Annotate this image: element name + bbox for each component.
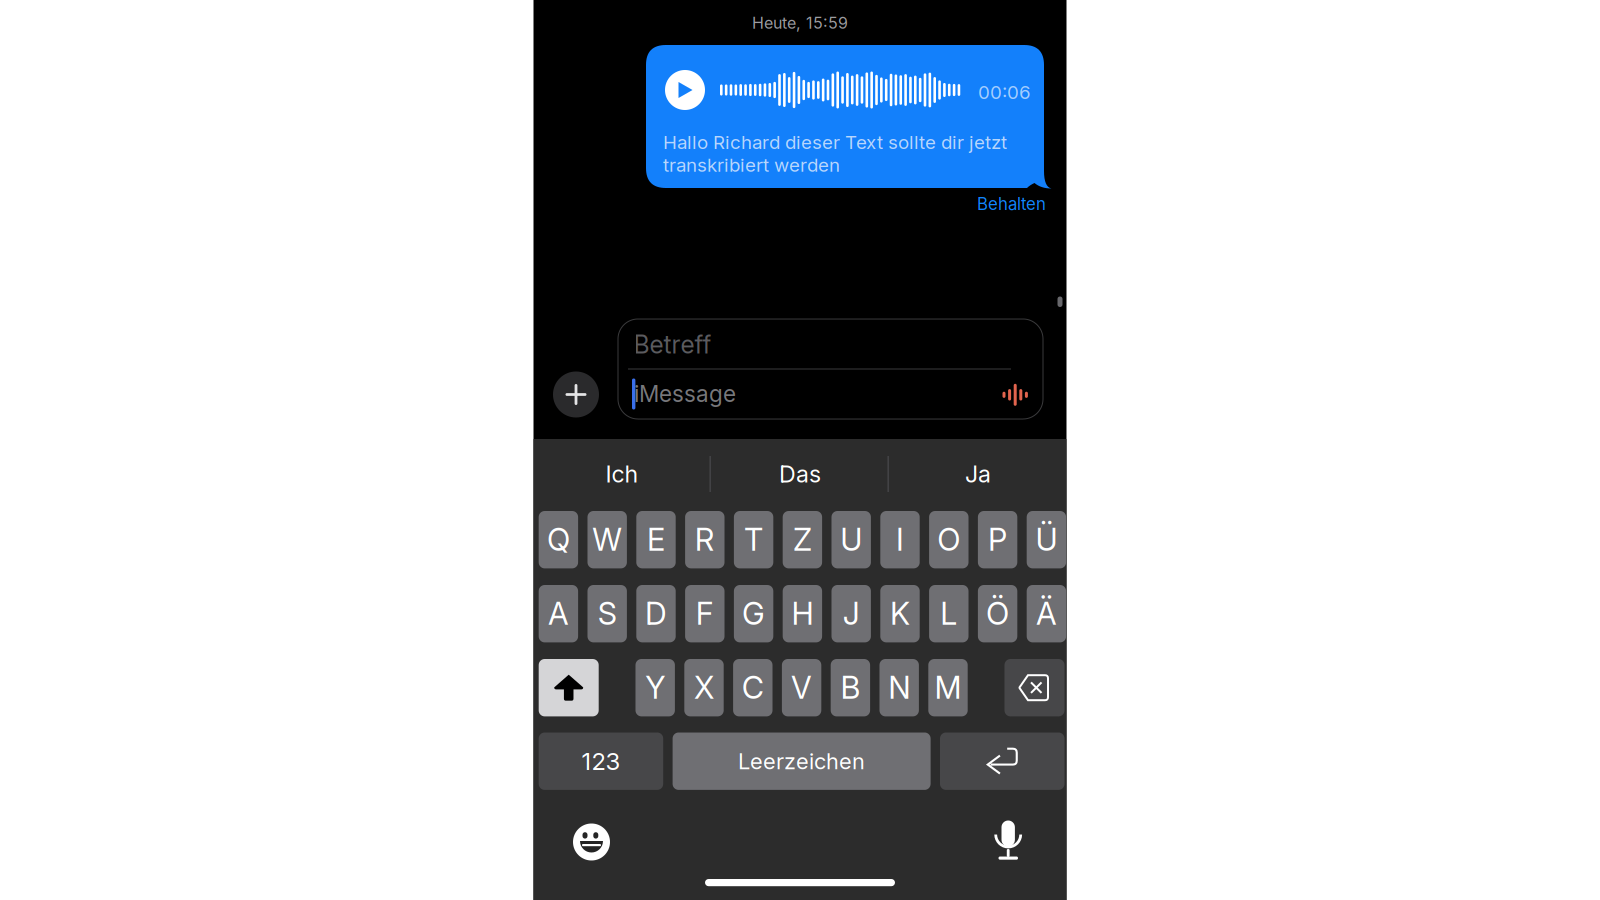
staticText: O (937, 521, 960, 558)
button[interactable]: Ich (533, 444, 710, 504)
staticText: M (934, 669, 961, 706)
staticText: T (744, 521, 763, 558)
staticText: Ja (965, 460, 991, 488)
button[interactable]: Leerzeichen (673, 732, 931, 790)
button[interactable]: V (782, 659, 821, 716)
staticText: P (988, 521, 1007, 558)
button[interactable]: Q (539, 511, 578, 568)
staticText: Ö (986, 595, 1009, 632)
button[interactable]: Delete (1004, 659, 1064, 716)
button[interactable]: Y (635, 659, 675, 716)
button[interactable]: S (587, 585, 627, 642)
staticText: H (791, 595, 813, 632)
button[interactable]: Ä (1027, 585, 1066, 642)
staticText: V (791, 669, 812, 706)
staticText: Heute, 15:59 (752, 13, 848, 33)
staticText: Das (779, 460, 821, 488)
staticText: X (694, 669, 714, 706)
staticText: K (890, 595, 910, 632)
staticText: D (645, 595, 667, 632)
button[interactable]: Emoji (566, 817, 616, 867)
staticText: E (647, 521, 665, 558)
staticText: J (843, 595, 860, 632)
button[interactable]: C (733, 659, 772, 716)
button[interactable]: E (636, 511, 676, 568)
button[interactable]: W (587, 511, 627, 568)
button[interactable]: L (929, 585, 968, 642)
button[interactable]: A (539, 585, 578, 642)
button[interactable]: Shift (539, 659, 599, 716)
button[interactable]: K (880, 585, 920, 642)
button[interactable]: T (734, 511, 773, 568)
staticText: I (896, 521, 904, 558)
button[interactable]: Ü (1027, 511, 1066, 568)
staticText: Hallo Richard dieser Text sollte dir jet… (663, 131, 1007, 176)
button[interactable]: G (734, 585, 773, 642)
staticText: Ä (1036, 595, 1057, 632)
button[interactable]: U (831, 511, 871, 568)
staticText: Ü (1035, 521, 1057, 558)
staticText: Leerzeichen (738, 748, 865, 774)
button[interactable]: I (880, 511, 920, 568)
staticText: G (742, 595, 765, 632)
staticText: B (840, 669, 860, 706)
button[interactable]: M (928, 659, 968, 716)
staticText: L (940, 595, 957, 632)
staticText: N (888, 669, 910, 706)
staticText: U (840, 521, 862, 558)
button[interactable]: H (783, 585, 822, 642)
button[interactable]: R (685, 511, 724, 568)
button[interactable]: 123 (539, 732, 663, 790)
button[interactable]: D (636, 585, 676, 642)
button[interactable]: Play audio message (665, 70, 705, 110)
button[interactable]: N (879, 659, 919, 716)
staticText: Ich (605, 460, 638, 488)
staticText: F (696, 595, 714, 632)
staticText: S (598, 595, 617, 632)
button[interactable]: Z (783, 511, 822, 568)
staticText: Z (793, 521, 812, 558)
staticText: C (742, 669, 764, 706)
staticText: Q (547, 521, 570, 558)
button[interactable]: Ö (978, 585, 1017, 642)
button[interactable]: B (831, 659, 870, 716)
button[interactable]: Add attachment (553, 371, 599, 417)
button[interactable]: Return (940, 732, 1064, 790)
button[interactable]: Dictation (989, 817, 1029, 867)
staticText: Betreff (633, 329, 711, 359)
staticText: A (548, 595, 569, 632)
button[interactable]: J (831, 585, 871, 642)
button[interactable]: X (684, 659, 724, 716)
staticText: R (695, 521, 715, 558)
staticText: Y (645, 669, 665, 706)
button[interactable]: Das (711, 444, 888, 504)
button[interactable]: O (929, 511, 968, 568)
button[interactable]: Behalten (926, 195, 1046, 213)
staticText: 123 (581, 747, 620, 776)
staticText: iMessage (634, 380, 736, 407)
button[interactable]: P (978, 511, 1017, 568)
button[interactable]: F (685, 585, 724, 642)
staticText: Behalten (977, 194, 1046, 214)
staticText: 00:06 (978, 81, 1031, 104)
staticText: W (592, 521, 622, 558)
button[interactable]: Ja (889, 444, 1066, 504)
